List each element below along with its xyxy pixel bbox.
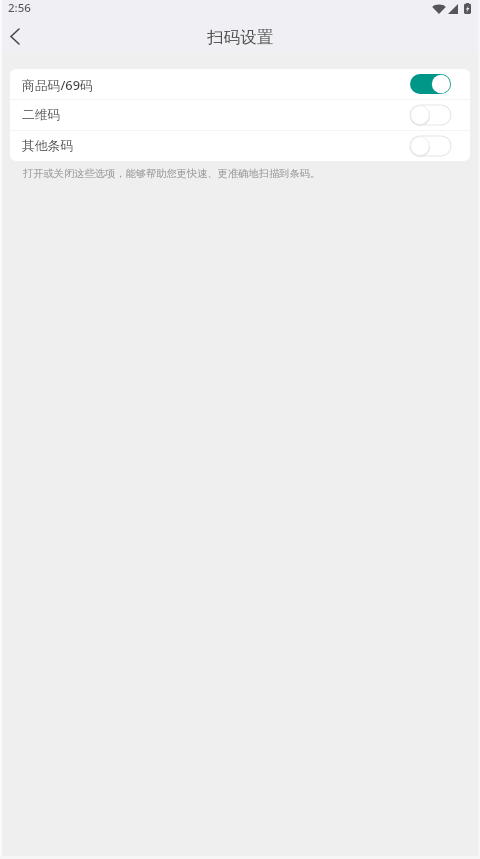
staticText: 二维码 [22, 107, 61, 123]
staticText: 扫码设置 [207, 27, 273, 48]
button[interactable]: 商品码/69码 [10, 69, 470, 99]
staticText: 商品码/69码 [22, 76, 93, 93]
button[interactable]: 其他条码 [10, 131, 470, 161]
button[interactable]: Back [0, 17, 36, 53]
staticText: 2:56 [8, 0, 31, 16]
staticText: 其他条码 [22, 138, 74, 154]
button[interactable]: 二维码 [10, 100, 470, 130]
staticText: 打开或关闭这些选项，能够帮助您更快速、更准确地扫描到条码。 [23, 167, 321, 180]
